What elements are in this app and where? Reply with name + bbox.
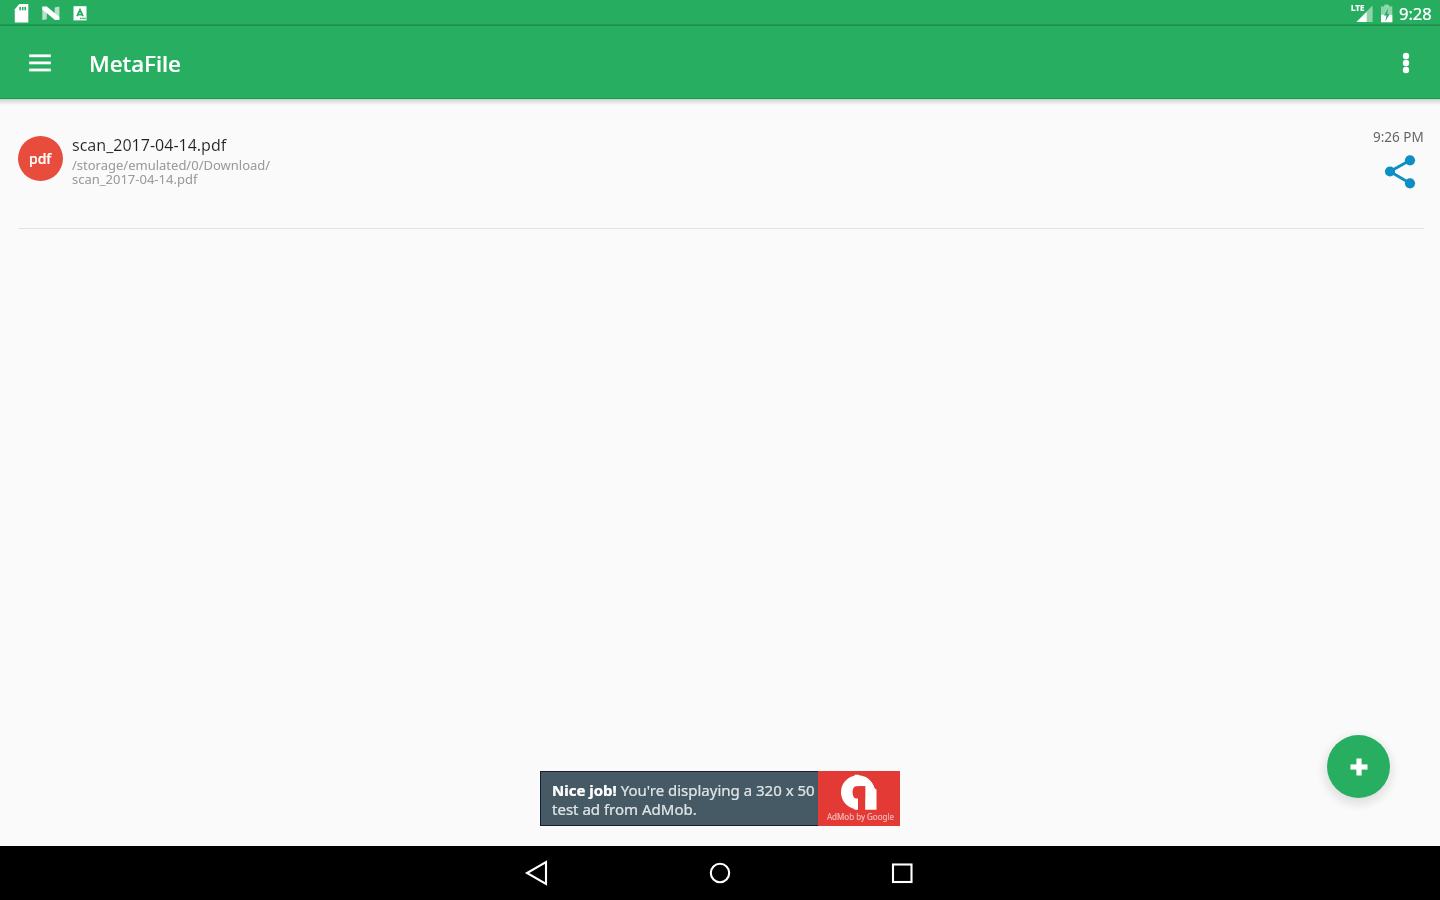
button[interactable]: Recent apps (872, 846, 932, 900)
staticText: pdf (29, 149, 52, 168)
button[interactable]: Advertisement (540, 771, 900, 826)
staticText: LTE (1351, 2, 1365, 13)
staticText: MetaFile (89, 48, 182, 79)
button[interactable]: More options (1382, 39, 1430, 87)
staticText: 9:28 (1399, 2, 1432, 24)
button[interactable]: Home (690, 846, 750, 900)
staticText: /storage/emulated/0/Download/ scan_2017-… (72, 156, 271, 188)
staticText: Nice job! You're displaying a 320 x 50 t… (552, 780, 815, 819)
button[interactable]: Add file (1327, 735, 1390, 798)
button[interactable]: Share (1377, 149, 1425, 197)
button[interactable]: pdf (0, 99, 1440, 228)
staticText: scan_2017-04-14.pdf (72, 134, 227, 156)
staticText: AdMob by Google (827, 811, 895, 822)
staticText: 9:26 PM (1373, 128, 1424, 146)
button[interactable]: Open navigation drawer (16, 39, 64, 87)
button[interactable]: Back (508, 846, 568, 900)
